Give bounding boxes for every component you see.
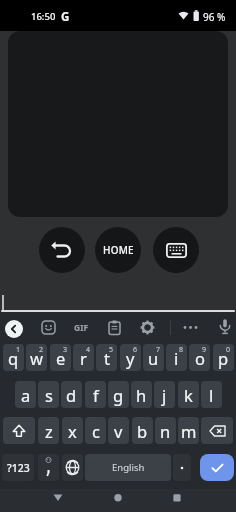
button[interactable]: k xyxy=(178,381,199,408)
staticText: ?123 xyxy=(7,461,30,475)
staticText: 8 xyxy=(179,345,184,355)
staticText: 9 xyxy=(202,345,207,355)
button[interactable]: o xyxy=(189,344,210,371)
button[interactable]: x xyxy=(62,417,83,444)
button[interactable]: t xyxy=(96,344,117,371)
button[interactable]: g xyxy=(108,381,129,408)
button[interactable] xyxy=(3,417,35,444)
staticText: HOME xyxy=(103,243,134,257)
staticText: a xyxy=(21,384,31,406)
staticText: p xyxy=(218,347,229,369)
button[interactable]: English xyxy=(85,454,171,481)
button[interactable]: v xyxy=(108,417,129,444)
staticText: 16:50 xyxy=(31,10,56,23)
staticText: t xyxy=(104,347,110,369)
staticText: 7 xyxy=(156,345,161,355)
button[interactable]: p xyxy=(213,344,234,371)
staticText: s xyxy=(45,384,53,406)
button[interactable]: ?123 xyxy=(2,454,34,481)
staticText: l xyxy=(209,384,214,406)
staticText: e xyxy=(56,347,66,369)
staticText: z xyxy=(45,420,53,442)
button[interactable] xyxy=(182,321,199,334)
button[interactable] xyxy=(38,454,59,481)
button[interactable] xyxy=(112,492,124,503)
button[interactable] xyxy=(39,227,85,273)
button[interactable]: h xyxy=(131,381,152,408)
button[interactable]: b xyxy=(132,417,153,444)
button[interactable] xyxy=(200,454,234,481)
button[interactable] xyxy=(201,417,233,444)
button[interactable] xyxy=(5,320,23,338)
button[interactable]: j xyxy=(154,381,175,408)
staticText: 96 % xyxy=(203,10,226,24)
button[interactable] xyxy=(62,454,83,481)
staticText: m xyxy=(181,420,197,442)
button[interactable]: d xyxy=(61,381,82,408)
staticText: k xyxy=(184,384,193,406)
button[interactable]: HOME xyxy=(95,227,141,273)
button[interactable]: l xyxy=(201,381,222,408)
staticText: 4 xyxy=(86,345,91,355)
staticText: y xyxy=(126,347,135,369)
staticText: x xyxy=(68,420,77,442)
staticText: w xyxy=(30,347,43,369)
button[interactable]: r xyxy=(73,344,94,371)
staticText: g xyxy=(113,384,124,406)
staticText: G xyxy=(61,9,70,25)
button[interactable]: s xyxy=(38,381,59,408)
button[interactable] xyxy=(108,320,121,335)
button[interactable]: q xyxy=(3,344,24,371)
button[interactable]: z xyxy=(38,417,59,444)
staticText: b xyxy=(137,420,148,442)
staticText: r xyxy=(80,347,87,369)
button[interactable]: e xyxy=(50,344,71,371)
staticText: d xyxy=(66,384,77,406)
staticText: v xyxy=(114,420,123,442)
staticText: i xyxy=(174,347,179,369)
staticText: 6 xyxy=(133,345,138,355)
staticText: c xyxy=(92,420,100,442)
staticText: h xyxy=(136,384,147,406)
button[interactable]: f xyxy=(85,381,106,408)
staticText: 5 xyxy=(109,345,114,355)
button[interactable] xyxy=(52,492,64,503)
button[interactable]: i xyxy=(166,344,187,371)
button[interactable] xyxy=(173,454,191,481)
button[interactable]: n xyxy=(155,417,176,444)
button[interactable] xyxy=(140,320,155,335)
staticText: u xyxy=(148,347,159,369)
button[interactable]: a xyxy=(15,381,36,408)
staticText: f xyxy=(93,384,99,406)
button[interactable] xyxy=(153,227,199,273)
button[interactable]: u xyxy=(143,344,164,371)
staticText: j xyxy=(162,384,167,406)
staticText: 2 xyxy=(39,345,44,355)
staticText: 1 xyxy=(16,345,21,355)
staticText: GIF xyxy=(74,322,89,334)
button[interactable]: m xyxy=(178,417,199,444)
staticText: q xyxy=(8,347,19,369)
staticText: 0 xyxy=(226,345,231,355)
staticText: 3 xyxy=(63,345,68,355)
button[interactable]: c xyxy=(85,417,106,444)
button[interactable]: w xyxy=(26,344,47,371)
button[interactable]: GIF xyxy=(72,321,90,334)
button[interactable]: y xyxy=(120,344,141,371)
staticText: English xyxy=(112,461,145,474)
staticText: n xyxy=(160,420,171,442)
button[interactable] xyxy=(171,492,183,503)
staticText: o xyxy=(195,347,205,369)
button[interactable] xyxy=(218,318,232,337)
button[interactable] xyxy=(41,320,56,335)
